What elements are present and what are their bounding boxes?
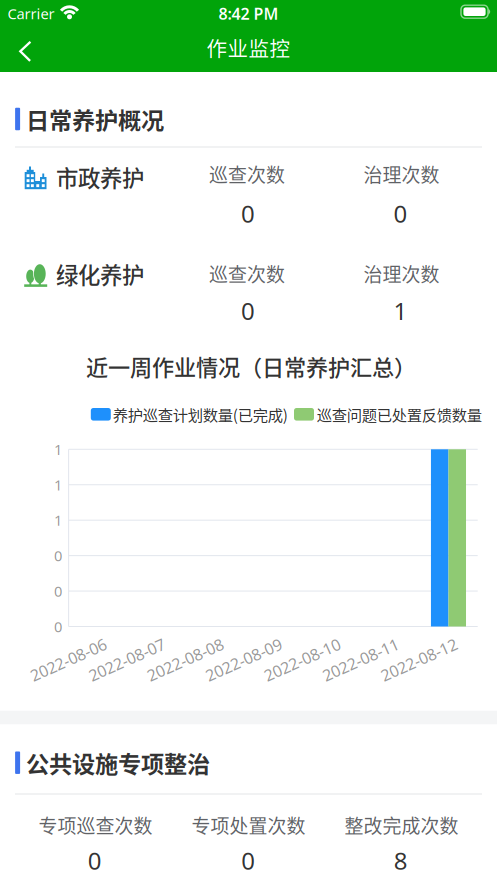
staticText: 治理次数 [363, 160, 439, 188]
staticText: 2022-08-10 [258, 632, 340, 654]
staticText: 2022-08-11 [316, 632, 398, 654]
staticText: 8 [394, 845, 408, 876]
button[interactable]: Back [8, 30, 42, 72]
staticText: 养护巡查计划数量(已完成) [113, 403, 288, 425]
staticText: 1 [54, 440, 62, 459]
staticText: 2022-08-07 [82, 632, 164, 654]
staticText: 日常养护概况 [26, 102, 164, 136]
staticText: 2022-08-06 [24, 632, 106, 654]
staticText: 1 [54, 510, 62, 530]
staticText: 0 [54, 581, 62, 601]
staticText: 0 [241, 295, 255, 327]
staticText: 2022-08-09 [199, 632, 281, 654]
staticText: 整改完成次数 [344, 811, 458, 839]
staticText: 专项处置次数 [191, 811, 305, 839]
staticText: 0 [241, 197, 255, 229]
staticText: 2022-08-08 [141, 632, 223, 654]
staticText: 0 [241, 845, 255, 876]
staticText: 巡查次数 [209, 160, 285, 188]
staticText: 专项巡查次数 [39, 811, 153, 839]
staticText: 近一周作业情况（日常养护汇总） [86, 350, 416, 382]
staticText: 巡查问题已处置反馈数量 [317, 403, 482, 425]
staticText: 公共设施专项整治 [26, 746, 210, 779]
staticText: 绿化养护 [56, 258, 144, 290]
staticText: 作业监控 [206, 33, 290, 62]
staticText: 8:42 PM [218, 3, 278, 24]
staticText: 0 [393, 197, 407, 229]
staticText: 0 [54, 546, 62, 565]
staticText: 2022-08-12 [374, 632, 456, 654]
staticText: 治理次数 [363, 260, 439, 287]
staticText: 市政养护 [56, 161, 144, 193]
staticText: 1 [54, 475, 62, 494]
staticText: Carrier [7, 4, 54, 23]
staticText: 0 [54, 617, 62, 636]
staticText: 0 [88, 845, 102, 876]
staticText: 巡查次数 [209, 260, 285, 287]
staticText: 1 [393, 295, 407, 327]
